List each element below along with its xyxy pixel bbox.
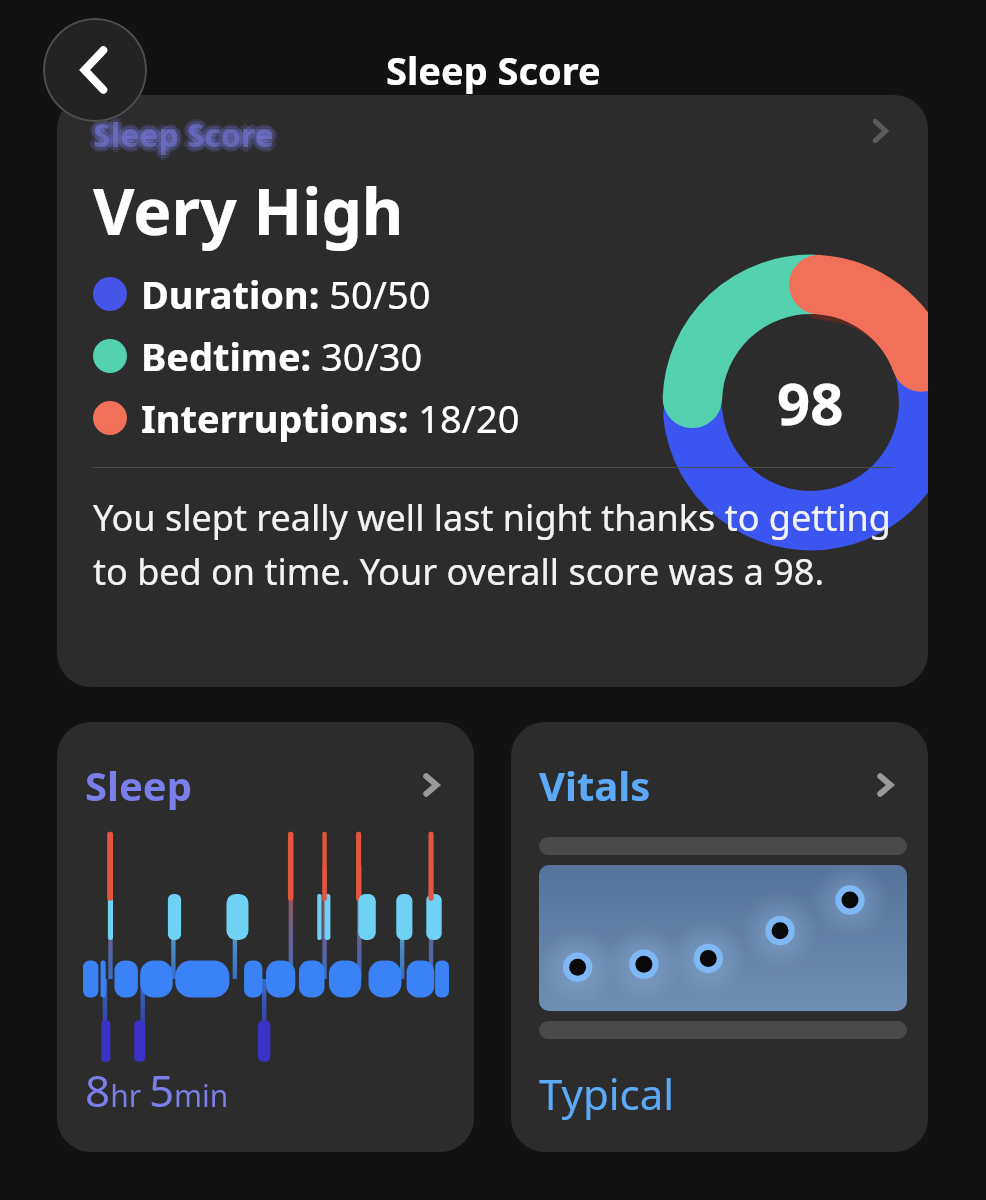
staticText: Very High [93,167,404,254]
staticText: You slept really well last night thanks … [93,493,893,596]
button[interactable]: Vitals [511,722,928,1152]
staticText: Sleep Score [90,116,271,160]
staticText: Sleep Score [88,113,269,157]
staticText: Sleep Score [90,110,271,154]
staticText: Sleep Score [386,44,601,96]
staticText: Sleep Score [93,108,274,152]
staticText: Sleep Score [93,113,274,157]
staticText: Vitals [539,758,651,812]
staticText: Interruptions: 18/20 [141,392,520,444]
button[interactable]: Sleep Score [57,95,928,687]
staticText: Sleep Score [93,118,274,162]
staticText: Sleep [85,758,192,812]
button[interactable]: Back [43,18,147,122]
staticText: Sleep Score [98,113,279,157]
staticText: Duration: 50/50 [141,268,431,320]
staticText: Sleep Score [96,116,277,160]
staticText: 98 [777,363,844,442]
staticText: Typical [539,1065,675,1122]
staticText: 8hr 5min [85,1060,229,1120]
staticText: Sleep Score [96,110,277,154]
button[interactable]: Sleep [57,722,474,1152]
staticText: Bedtime: 30/30 [141,330,423,382]
